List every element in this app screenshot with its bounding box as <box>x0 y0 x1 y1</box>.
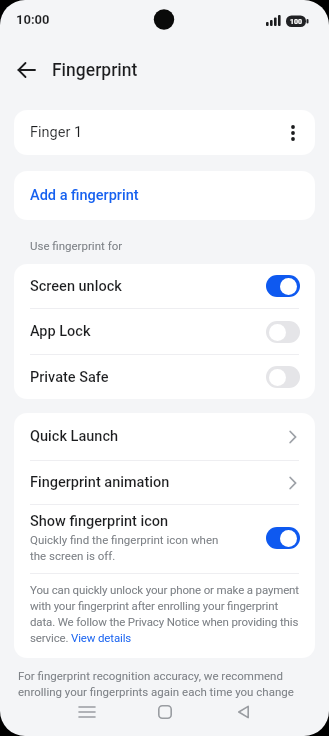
staticText: 10:00 <box>16 12 50 27</box>
staticText: 100 <box>290 18 303 26</box>
staticText: Quickly find the fingerprint icon when t… <box>30 533 219 562</box>
button[interactable]: Finger 1 <box>14 110 315 155</box>
staticText: You can quickly unlock your phone or mak… <box>30 583 299 644</box>
button[interactable]: Quick Launch <box>14 413 315 460</box>
button[interactable] <box>8 52 44 88</box>
staticText: Fingerprint <box>52 60 138 81</box>
button[interactable]: Add a fingerprint <box>14 171 315 220</box>
button[interactable] <box>229 698 257 726</box>
staticText: For fingerprint recognition accuracy, we… <box>18 669 294 698</box>
button[interactable] <box>266 527 300 549</box>
button[interactable] <box>266 275 300 297</box>
staticText: Show fingerprint icon <box>30 513 169 530</box>
button[interactable]: Private Safe <box>14 355 315 399</box>
button[interactable]: Fingerprint animation <box>14 461 315 504</box>
button[interactable] <box>73 698 101 726</box>
staticText: Screen unlock <box>30 278 122 295</box>
button[interactable]: App Lock <box>14 309 315 354</box>
staticText: App Lock <box>30 323 91 340</box>
staticText: Add a fingerprint <box>30 187 139 204</box>
staticText: Finger 1 <box>30 124 83 141</box>
button[interactable] <box>151 698 179 726</box>
button[interactable]: Show fingerprint icon <box>14 505 315 573</box>
staticText: Private Safe <box>30 369 109 386</box>
button[interactable] <box>266 321 300 343</box>
staticText: Use fingerprint for <box>30 239 123 252</box>
button[interactable] <box>281 121 305 145</box>
button[interactable]: Screen unlock <box>14 264 315 308</box>
staticText: Fingerprint animation <box>30 474 170 491</box>
staticText: Quick Launch <box>30 428 119 445</box>
button[interactable] <box>266 366 300 388</box>
